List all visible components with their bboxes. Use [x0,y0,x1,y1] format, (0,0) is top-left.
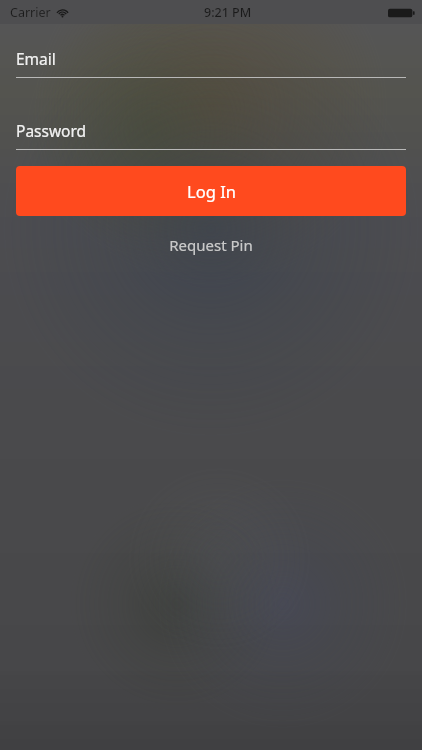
staticText: Request Pin [169,235,253,255]
button[interactable]: Request Pin [0,230,422,260]
staticText: Password [16,120,87,141]
button[interactable]: Log In [16,166,406,216]
button[interactable]: Password [16,120,406,150]
staticText: 9:21 PM [204,4,252,21]
staticText: Email [16,48,56,69]
staticText: Carrier [10,4,51,21]
button[interactable]: Email [16,48,406,78]
staticText: Log In [187,180,236,202]
